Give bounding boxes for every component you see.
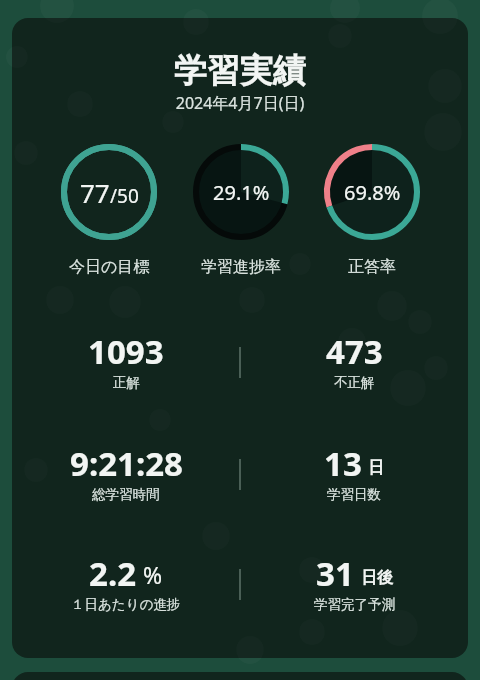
staticText: 31 — [316, 551, 354, 593]
staticText: 日後 — [361, 568, 393, 588]
button[interactable]: 13 — [240, 441, 468, 503]
button[interactable]: 9:21:28 — [12, 441, 240, 503]
button[interactable]: 31 — [240, 551, 468, 613]
staticText: % — [143, 559, 163, 590]
staticText: 9:21:28 — [70, 441, 183, 483]
button[interactable]: 1093 — [12, 329, 240, 391]
staticText: １日あたりの進捗 — [71, 596, 181, 613]
button[interactable]: 69.8% — [306, 144, 437, 277]
button[interactable]: 29.1% — [175, 144, 306, 277]
staticText: 29.1% — [213, 179, 270, 206]
staticText: 13 — [324, 441, 362, 483]
staticText: 2.2 — [89, 551, 137, 593]
staticText: 総学習時間 — [92, 486, 160, 503]
staticText: 正答率 — [348, 257, 396, 277]
staticText: /50 — [110, 183, 139, 209]
staticText: 正解 — [113, 374, 140, 391]
staticText: 不正解 — [334, 374, 375, 391]
button[interactable]: 473 — [240, 329, 468, 391]
staticText: 学習完了予測 — [314, 596, 395, 613]
staticText: 473 — [326, 329, 383, 371]
staticText: 1093 — [88, 329, 164, 371]
staticText: 学習進捗率 — [201, 257, 281, 277]
staticText: 2024年4月7日(日) — [12, 92, 468, 114]
staticText: 日 — [368, 458, 384, 478]
staticText: 77 — [80, 175, 110, 210]
staticText: 69.8% — [344, 179, 401, 206]
button[interactable]: 2.2 — [12, 551, 240, 613]
staticText: 今日の目標 — [69, 257, 150, 277]
button[interactable]: 77 — [43, 144, 175, 277]
staticText: 学習日数 — [327, 486, 381, 503]
staticText: 学習実績 — [12, 50, 468, 92]
